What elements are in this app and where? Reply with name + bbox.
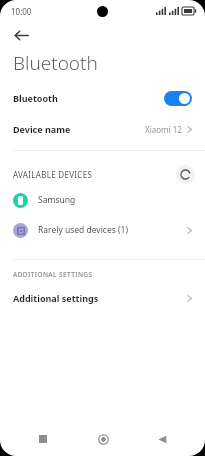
- staticText: Samsung: [38, 194, 76, 206]
- staticText: AVAILABLE DEVICES: [13, 169, 93, 180]
- staticText: Bluetooth: [13, 50, 98, 76]
- staticText: Additional settings: [13, 292, 99, 304]
- staticText: ADDITIONAL SETTINGS: [13, 270, 93, 279]
- staticText: Xiaomi 12: [145, 124, 182, 135]
- button[interactable]: Back: [145, 422, 179, 456]
- button[interactable]: Back: [8, 22, 34, 48]
- button[interactable]: Recents: [26, 422, 60, 456]
- staticText: Device name: [13, 123, 71, 135]
- button[interactable]: Home: [86, 422, 120, 456]
- button[interactable]: Samsung: [0, 185, 205, 215]
- staticText: Bluetooth: [13, 92, 58, 104]
- button[interactable]: Additional settings: [0, 285, 205, 311]
- staticText: Rarely used devices (1): [38, 224, 128, 236]
- button[interactable]: Bluetooth: [0, 82, 205, 114]
- button[interactable]: Device name: [0, 114, 205, 144]
- button[interactable]: Refresh: [176, 165, 195, 184]
- staticText: 10:00: [11, 6, 32, 17]
- button[interactable]: Rarely used devices (1): [0, 215, 205, 245]
